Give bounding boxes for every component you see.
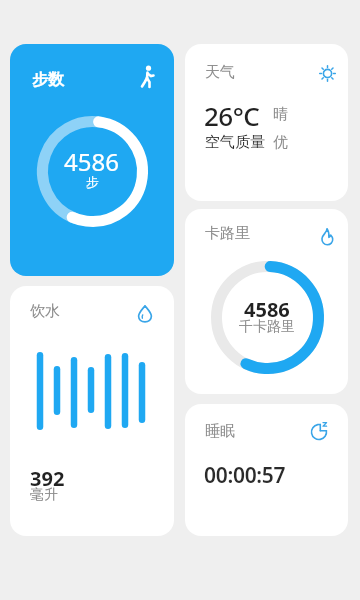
staticText: 空气质量	[205, 133, 265, 152]
staticText: 毫升	[30, 486, 58, 504]
staticText: 步数	[32, 70, 64, 90]
staticText: 饮水	[30, 302, 60, 321]
staticText: 晴	[273, 105, 288, 124]
staticText: 睡眠	[205, 422, 235, 441]
button[interactable]: 饮水	[10, 286, 174, 536]
button[interactable]: 天气	[185, 44, 348, 201]
staticText: 千卡路里	[239, 318, 295, 336]
staticText: 4586	[244, 296, 290, 323]
staticText: 卡路里	[205, 224, 250, 243]
staticText: 392	[30, 465, 65, 492]
staticText: 00:00:57	[204, 461, 286, 490]
staticText: 4586	[64, 145, 119, 178]
staticText: 步	[86, 174, 99, 190]
staticText: 26°C	[204, 98, 260, 133]
button[interactable]: 卡路里	[185, 209, 348, 394]
button[interactable]: 步数	[10, 44, 174, 276]
button[interactable]: 睡眠	[185, 404, 348, 536]
staticText: 天气	[205, 63, 235, 82]
staticText: 优	[273, 133, 288, 152]
